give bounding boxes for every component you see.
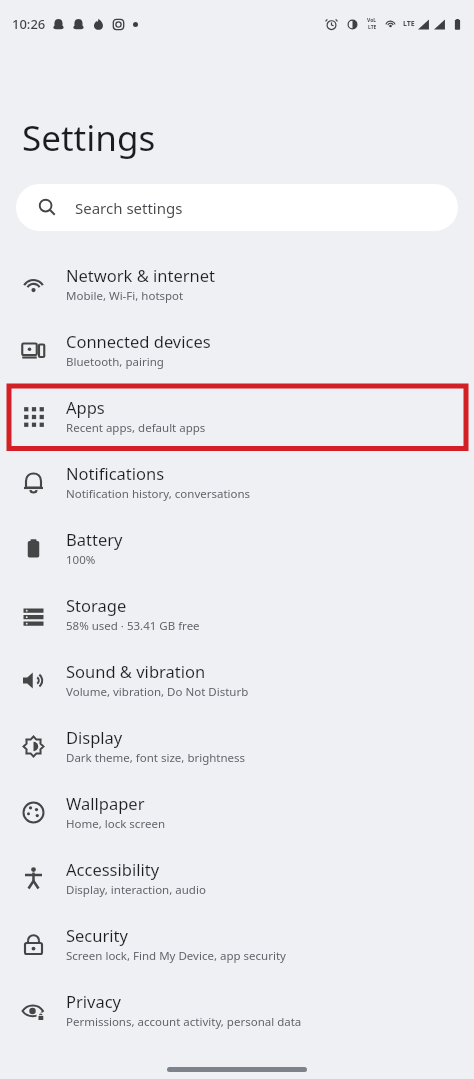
button[interactable]: Notifications (0, 449, 474, 515)
staticText: Mobile, Wi-Fi, hotspot (66, 288, 184, 304)
staticText: Screen lock, Find My Device, app securit… (66, 948, 286, 964)
staticText: LTE (368, 24, 377, 31)
staticText: Recent apps, default apps (66, 420, 206, 436)
other: Sound and vibration (21, 668, 46, 693)
staticText: Volume, vibration, Do Not Disturb (66, 684, 249, 700)
button[interactable]: Display (0, 713, 474, 779)
button[interactable]: Sound and vibration (0, 647, 474, 713)
button[interactable]: Accessibility (0, 845, 474, 911)
other: Network and internet (21, 272, 46, 297)
staticText: Notification history, conversations (66, 486, 251, 502)
other: Wallpaper (21, 800, 46, 825)
staticText: Storage (66, 594, 127, 616)
staticText: Search settings (75, 198, 183, 218)
other: Privacy (21, 998, 46, 1023)
staticText: Display, interaction, audio (66, 882, 206, 898)
button[interactable]: Privacy (0, 977, 474, 1043)
staticText: 58% used · 53.41 GB free (66, 618, 200, 634)
staticText: Battery (66, 528, 123, 550)
button[interactable]: Storage (0, 581, 474, 647)
other: Battery (21, 536, 46, 561)
staticText: VoL (367, 17, 377, 24)
staticText: Accessibility (66, 858, 160, 880)
button[interactable]: Wallpaper (0, 779, 474, 845)
other: Connected devices (21, 338, 46, 363)
other: Display (21, 734, 46, 759)
staticText: Bluetooth, pairing (66, 354, 164, 370)
staticText: Security (66, 924, 128, 946)
staticText: Notifications (66, 462, 165, 484)
other: Accessibility (21, 866, 46, 891)
other: Security (21, 932, 46, 957)
staticText: Dark theme, font size, brightness (66, 750, 246, 766)
staticText: Privacy (66, 990, 122, 1012)
button[interactable]: Battery (0, 515, 474, 581)
button[interactable]: Network and internet (0, 251, 474, 317)
staticText: Sound & vibration (66, 660, 206, 682)
staticText: Home, lock screen (66, 816, 165, 832)
other: Storage (21, 602, 46, 627)
button[interactable]: Search settings (16, 184, 458, 231)
staticText: LTE (403, 19, 415, 29)
staticText: Wallpaper (66, 792, 145, 814)
button[interactable]: Security (0, 911, 474, 977)
staticText: 10:26 (12, 15, 46, 33)
button[interactable]: Apps (0, 383, 474, 449)
staticText: Permissions, account activity, personal … (66, 1014, 302, 1030)
staticText: Display (66, 726, 123, 748)
staticText: 100% (66, 552, 96, 568)
staticText: Settings (22, 114, 156, 162)
staticText: Network & internet (66, 264, 216, 286)
other: Apps (21, 404, 46, 429)
button[interactable]: Connected devices (0, 317, 474, 383)
other: Notifications (21, 470, 46, 495)
staticText: Apps (66, 396, 105, 418)
staticText: Connected devices (66, 330, 211, 352)
